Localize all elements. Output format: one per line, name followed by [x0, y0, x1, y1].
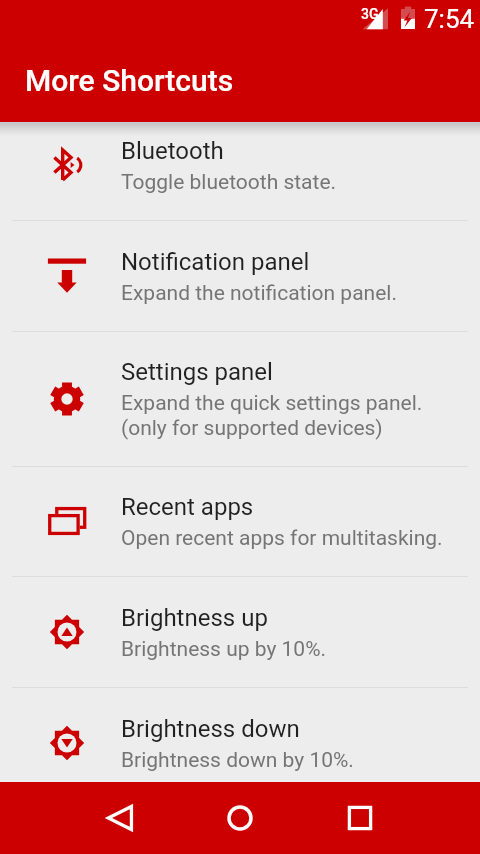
staticText: Open recent apps for multitasking.	[121, 526, 443, 551]
button[interactable]: Recent apps	[328, 786, 392, 850]
staticText: Brightness down by 10%.	[121, 748, 354, 773]
button[interactable]: Bluetooth	[0, 122, 480, 220]
staticText: Brightness up by 10%.	[121, 637, 327, 662]
staticText: Toggle bluetooth state.	[121, 170, 337, 195]
staticText: (only for supported devices)	[121, 416, 383, 441]
button[interactable]: Brightness up	[0, 576, 480, 687]
button[interactable]: Recent apps	[0, 466, 480, 576]
button[interactable]: Home	[208, 786, 272, 850]
staticText: Expand the notification panel.	[121, 281, 397, 306]
staticText: Expand the quick settings panel.	[121, 391, 423, 416]
staticText: 3G	[361, 6, 379, 22]
staticText: Notification panel	[121, 248, 310, 276]
staticText: Brightness down	[121, 715, 300, 743]
staticText: Settings panel	[121, 358, 273, 386]
staticText: 7:54	[424, 4, 475, 34]
button[interactable]: Brightness down	[0, 687, 480, 782]
staticText: More Shortcuts	[25, 63, 234, 98]
button[interactable]: Back	[87, 786, 151, 850]
staticText: Brightness up	[121, 604, 268, 632]
button[interactable]: Settings panel	[0, 331, 480, 466]
staticText: Recent apps	[121, 493, 254, 521]
button[interactable]: Notification panel	[0, 220, 480, 331]
staticText: Bluetooth	[121, 137, 224, 165]
